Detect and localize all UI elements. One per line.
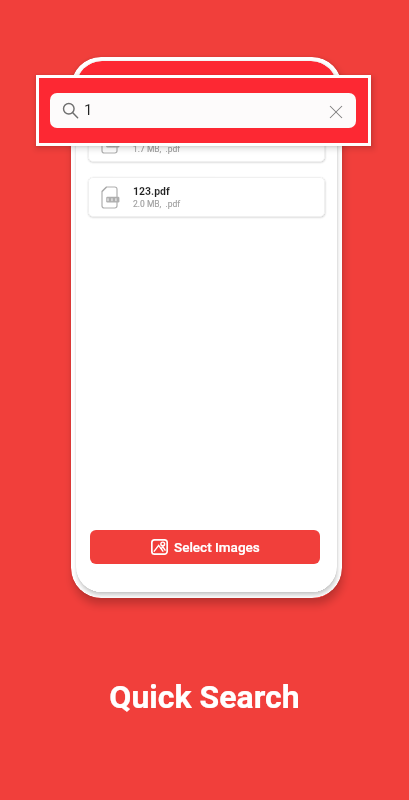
- button[interactable]: Doc.pdf: [88, 122, 325, 162]
- staticText: Quick Search: [0, 678, 409, 716]
- button[interactable]: 1: [50, 93, 356, 128]
- button[interactable]: 123.pdf: [88, 177, 325, 217]
- staticText: 1: [84, 101, 93, 119]
- staticText: Select Images: [174, 539, 260, 555]
- staticText: 1.7 MB, .pdf: [133, 144, 181, 154]
- staticText: 2.0 MB, .pdf: [133, 199, 181, 209]
- staticText: 123.pdf: [133, 185, 170, 197]
- button[interactable]: Select Images: [90, 530, 320, 564]
- button[interactable]: Clear search: [330, 106, 342, 118]
